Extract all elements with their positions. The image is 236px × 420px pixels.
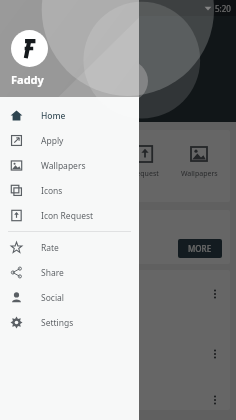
staticText: Apply (41, 135, 64, 147)
staticText: Rate (41, 242, 59, 254)
staticText: MORE (188, 243, 212, 254)
button[interactable]: Share (0, 260, 139, 285)
staticText: Home (41, 110, 66, 122)
button[interactable]: Apply (14, 144, 60, 179)
button[interactable]: More options (206, 285, 224, 303)
button[interactable]: Action (28, 60, 70, 102)
button[interactable]: Profile (11, 30, 48, 67)
button[interactable]: Home (0, 103, 139, 128)
button[interactable]: Icons (0, 178, 139, 203)
button[interactable]: Wallpapers (0, 153, 139, 178)
button[interactable]: Icons (68, 144, 114, 179)
button[interactable]: Social (0, 285, 139, 310)
staticText: Icons (41, 185, 63, 197)
button[interactable]: MORE (178, 239, 222, 258)
staticText: Wallpapers (181, 169, 218, 179)
button[interactable]: Request (122, 144, 168, 179)
staticText: Share (41, 267, 64, 279)
staticText: 5:20 (215, 3, 231, 14)
button[interactable]: Rate (0, 235, 139, 260)
button[interactable]: Apply (0, 128, 139, 153)
staticText: Faddy (11, 72, 44, 87)
staticText: Settings (41, 317, 74, 329)
button[interactable]: More options (206, 391, 224, 409)
staticText: Social (41, 292, 65, 304)
staticText: Request (132, 169, 159, 179)
button[interactable]: Wallpapers (176, 144, 222, 179)
button[interactable]: Icon Request (0, 203, 139, 228)
button[interactable]: Settings (0, 310, 139, 335)
button[interactable]: Action (106, 60, 148, 102)
button[interactable]: More options (206, 345, 224, 363)
staticText: Wallpapers (41, 160, 86, 172)
staticText: Icon Request (41, 210, 94, 222)
